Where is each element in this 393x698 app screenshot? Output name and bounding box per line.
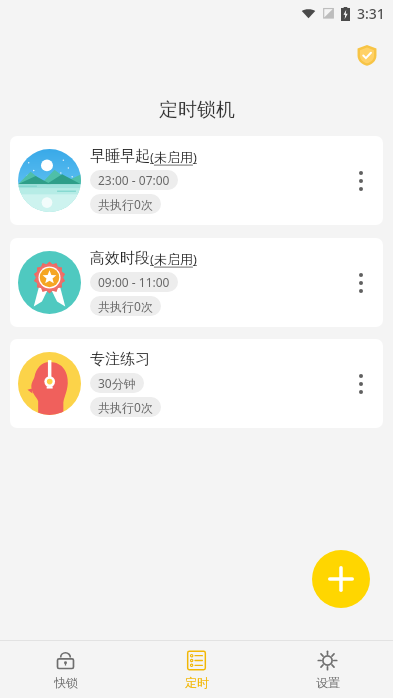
staticText: 共执行0次 [98,196,153,212]
staticText: (未启用) [150,250,197,268]
staticText: 共执行0次 [98,399,153,415]
staticText: 09:00 - 11:00 [98,274,170,290]
button[interactable]: 设置 [262,641,393,698]
staticText: 早睡早起 [90,147,150,166]
button[interactable]: 专注练习 [10,339,383,428]
button[interactable]: Add timer [312,550,370,608]
button[interactable]: More options [339,339,383,428]
button[interactable]: 定时 [131,641,262,698]
staticText: (未启用) [150,148,197,166]
button[interactable]: 早睡早起 [10,136,383,225]
button[interactable]: Protection status [354,42,380,68]
staticText: 定时锁机 [159,98,235,122]
staticText: 快锁 [54,675,78,690]
button[interactable]: 快锁 [0,641,131,698]
staticText: 定时 [185,675,209,690]
staticText: 高效时段 [90,249,150,268]
button[interactable]: 高效时段 [10,238,383,327]
staticText: 专注练习 [90,350,150,369]
staticText: 设置 [316,675,340,690]
staticText: 23:00 - 07:00 [98,172,170,188]
staticText: 共执行0次 [98,298,153,314]
staticText: 3:31 [357,4,385,23]
button[interactable]: More options [339,238,383,327]
staticText: 30分钟 [98,375,136,391]
button[interactable]: More options [339,136,383,225]
